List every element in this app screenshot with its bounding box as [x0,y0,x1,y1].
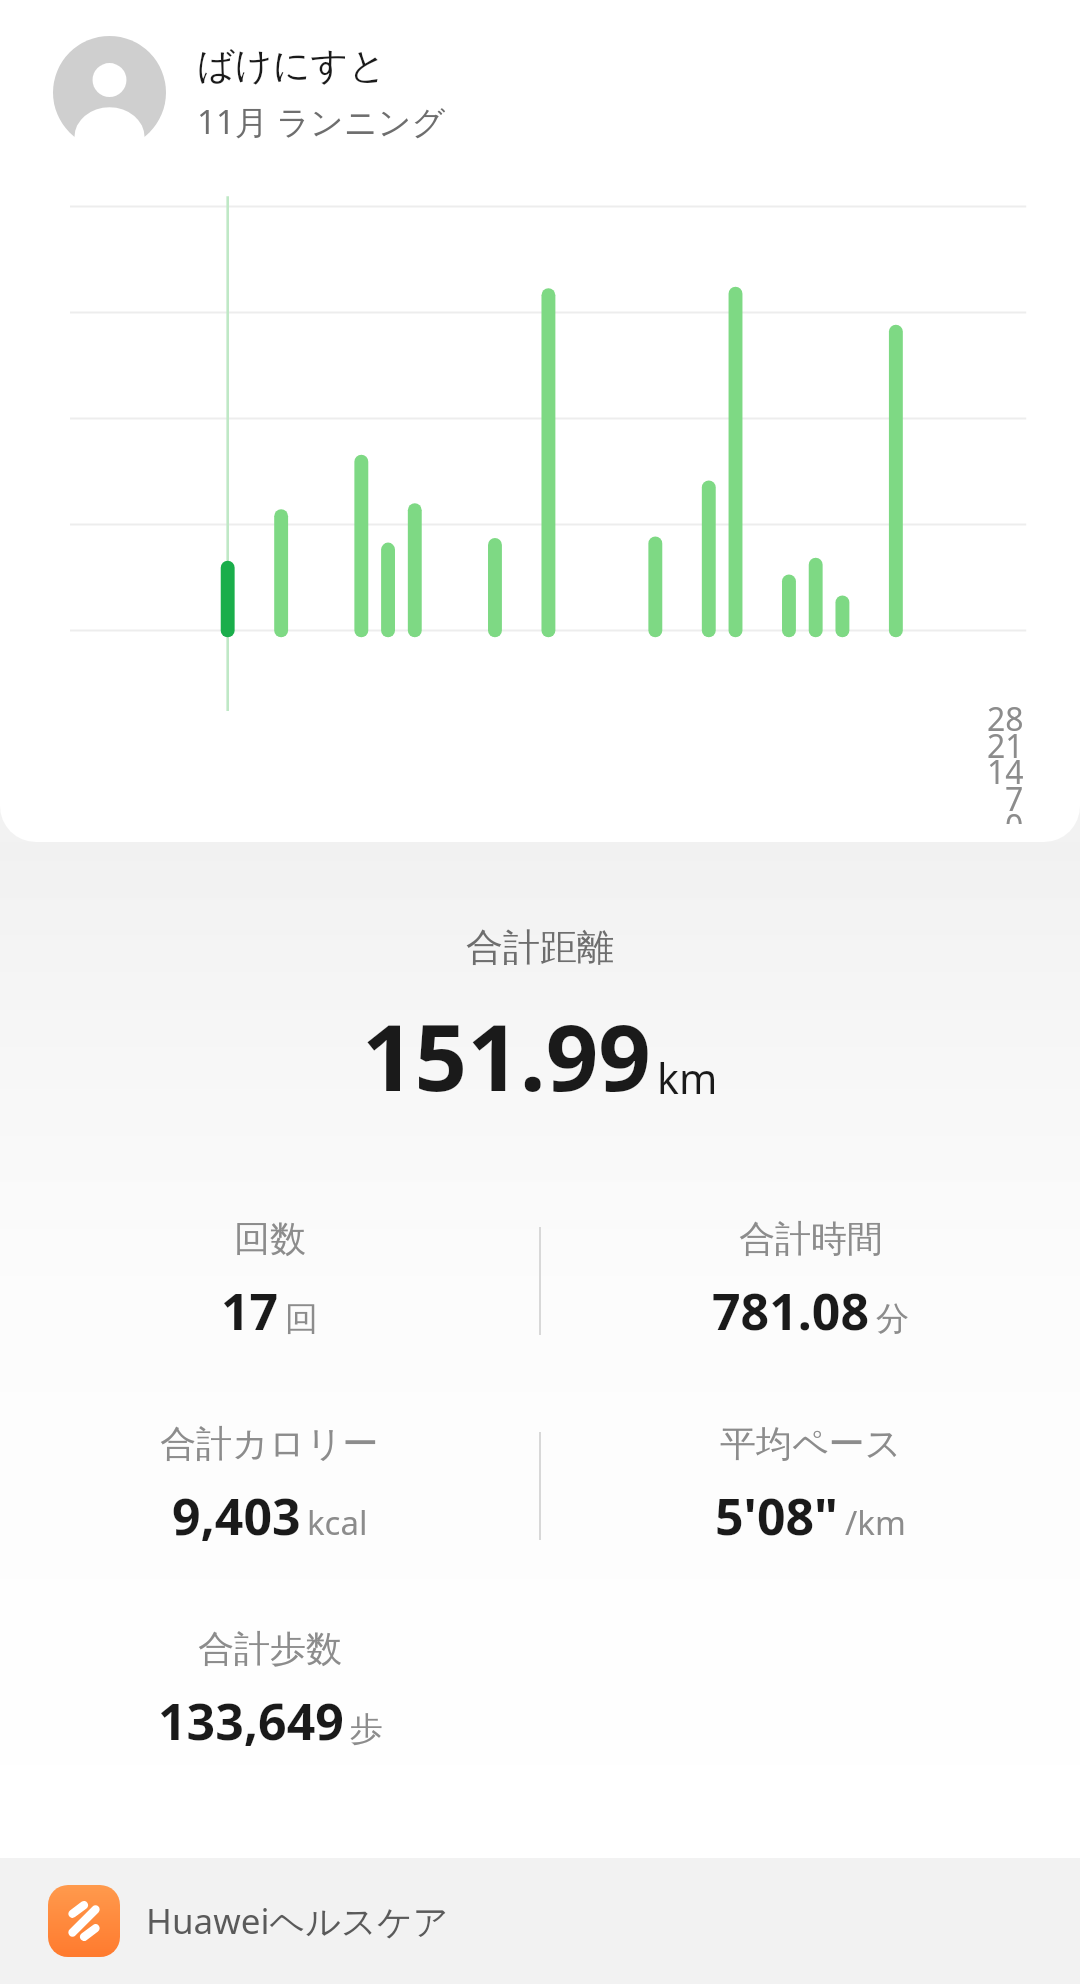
other: Huawei Health [48,1885,120,1957]
staticText: 11月 ランニング [197,99,446,144]
button[interactable]: 合計歩数 [0,1626,540,1755]
staticText: 回 [285,1298,318,1340]
staticText: /km [845,1500,906,1545]
button[interactable]: 合計カロリー [0,1421,539,1550]
button[interactable]: Huawei Health [0,1858,1080,1984]
staticText: 21 [987,724,1024,768]
staticText: 分 [876,1298,909,1340]
staticText: Huaweiヘルスケア [146,1897,449,1945]
staticText: 平均ペース [720,1421,902,1466]
button[interactable]: ばけにすと [53,36,1080,149]
staticText: ばけにすと [197,42,387,89]
staticText: 合計カロリー [160,1421,379,1466]
staticText: 回数 [234,1216,306,1261]
staticText: 合計時間 [739,1216,883,1261]
staticText: 28 [987,697,1024,741]
staticText: 17 [221,1277,279,1345]
staticText: 781.08 [712,1277,870,1345]
staticText: 合計距離 [0,924,1080,971]
button[interactable]: 回数 [0,1216,539,1345]
button[interactable]: Scrubber [91,790,167,866]
staticText: kcal [307,1500,368,1545]
staticText: 133,649 [158,1687,344,1755]
staticText: km [657,1050,718,1106]
staticText: 14 [987,750,1024,794]
staticText: 7 [1005,777,1024,821]
staticText: 9,403 [172,1482,301,1550]
button[interactable]: 平均ペース [541,1421,1080,1550]
staticText: 合計歩数 [198,1626,342,1671]
staticText: 5'08" [715,1482,839,1550]
staticText: 歩 [350,1708,383,1750]
staticText: 0 [1005,804,1024,824]
staticText: 151.99 [362,993,651,1118]
button[interactable]: 合計時間 [541,1216,1080,1345]
